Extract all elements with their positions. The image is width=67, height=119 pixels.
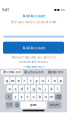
button[interactable]: q xyxy=(4,77,9,84)
button[interactable]: t xyxy=(28,77,33,84)
button[interactable]: Add Account xyxy=(0,13,67,19)
staticText: e xyxy=(17,78,19,83)
staticText: products and services. xyxy=(18,60,48,64)
button[interactable]: 123 xyxy=(5,101,13,108)
staticText: i xyxy=(48,78,49,83)
button[interactable]: c xyxy=(25,93,30,100)
button[interactable]: Add Account xyxy=(3,42,64,54)
staticText: m xyxy=(49,94,53,99)
staticText: Privacy Statement xyxy=(22,65,44,68)
staticText: @outlook.com xyxy=(24,70,43,74)
button[interactable]: @hotmail.com xyxy=(1,70,23,75)
button[interactable]: m xyxy=(49,93,54,100)
staticText: b xyxy=(38,94,40,99)
button[interactable]: space xyxy=(20,101,46,108)
button[interactable]: r xyxy=(22,77,27,84)
staticText: n xyxy=(44,94,46,99)
button[interactable]: b xyxy=(37,93,42,100)
button[interactable]: i xyxy=(46,77,51,84)
button[interactable]: s xyxy=(13,85,18,92)
button[interactable]: d xyxy=(19,85,24,92)
staticText: x xyxy=(20,94,22,99)
staticText: Add Account xyxy=(22,13,44,18)
button[interactable]: @outlook.com xyxy=(23,70,44,75)
button[interactable]: return xyxy=(47,101,61,108)
staticText: h xyxy=(38,86,40,91)
staticText: Enter your work or personal email xyxy=(10,20,56,24)
button[interactable]: y xyxy=(34,77,39,84)
staticText: Add Account xyxy=(22,45,44,50)
staticText: ⌫ xyxy=(55,94,61,99)
button[interactable]: v xyxy=(31,93,36,100)
button[interactable]: e xyxy=(16,77,21,84)
staticText: 9:41 xyxy=(2,7,9,12)
staticText: f xyxy=(27,86,28,91)
staticText: t xyxy=(30,78,31,83)
staticText: ▪▪ ▭ xyxy=(54,7,65,12)
button[interactable]: w xyxy=(10,77,15,84)
button[interactable]: n xyxy=(43,93,48,100)
button[interactable]: Privacy Statement xyxy=(22,65,44,68)
staticText: g xyxy=(32,86,34,91)
staticText: Microsoft may email you about its xyxy=(11,56,55,59)
button[interactable]: u xyxy=(40,77,45,84)
staticText: p xyxy=(59,78,61,83)
button[interactable]: f xyxy=(25,85,30,92)
button[interactable]: g xyxy=(31,85,36,92)
staticText: v xyxy=(32,94,34,99)
staticText: @hotmail.com xyxy=(3,70,21,74)
staticText: a xyxy=(8,86,10,91)
staticText: y xyxy=(35,78,37,83)
button[interactable]: @gmail.com xyxy=(44,70,66,75)
staticText: w xyxy=(11,78,14,83)
button[interactable]: l xyxy=(55,85,60,92)
button[interactable]: o xyxy=(52,77,57,84)
staticText: c xyxy=(26,94,28,99)
button[interactable]: k xyxy=(49,85,54,92)
button[interactable]: a xyxy=(7,85,12,92)
staticText: ☺ xyxy=(15,103,19,107)
staticText: o xyxy=(53,78,55,83)
staticText: r xyxy=(23,78,25,83)
button[interactable]: ⌫ xyxy=(55,93,62,100)
button[interactable]: ⇧ xyxy=(5,93,12,100)
staticText: u xyxy=(41,78,43,83)
staticText: d xyxy=(20,86,22,91)
button[interactable]: p xyxy=(58,77,63,84)
button[interactable]: h xyxy=(37,85,42,92)
staticText: ⇧ xyxy=(7,94,10,99)
staticText: space xyxy=(30,103,37,107)
staticText: @gmail.com xyxy=(48,70,63,74)
button[interactable]: z xyxy=(13,93,18,100)
staticText: 123 xyxy=(6,103,12,107)
button[interactable]: j xyxy=(43,85,48,92)
staticText: return xyxy=(50,103,59,107)
staticText: s xyxy=(14,86,16,91)
button[interactable]: x xyxy=(19,93,24,100)
staticText: z xyxy=(14,94,16,99)
staticText: k xyxy=(50,86,52,91)
staticText: l xyxy=(57,86,58,91)
staticText: j xyxy=(45,86,46,91)
staticText: q xyxy=(5,78,7,83)
button[interactable]: ☺ xyxy=(14,101,19,108)
